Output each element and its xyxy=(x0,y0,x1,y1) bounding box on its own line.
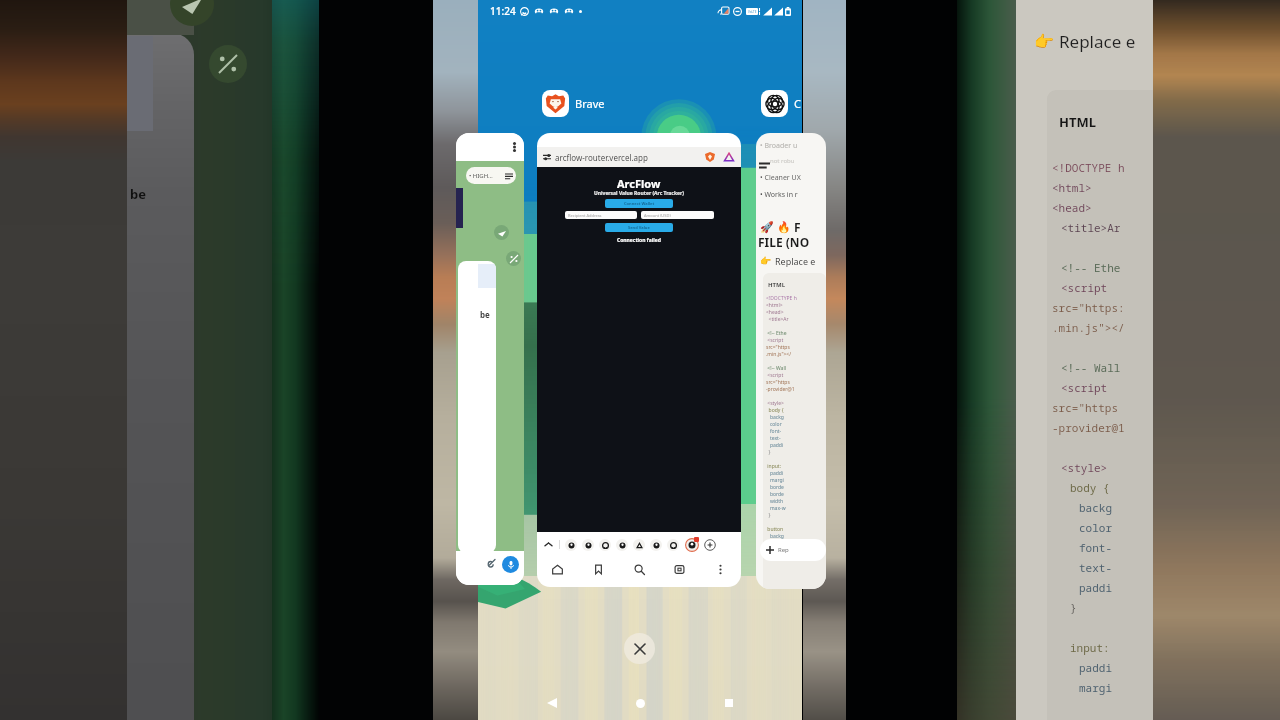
staticText: • Cleaner UX xyxy=(760,173,801,183)
staticText: text- xyxy=(766,435,781,442)
staticText: } xyxy=(1070,600,1077,615)
staticText: HTML xyxy=(768,281,786,289)
staticText: VoLTE xyxy=(748,10,757,14)
staticText: <html> xyxy=(766,302,783,309)
staticText: • HIGH… xyxy=(469,172,493,180)
staticText: <script xyxy=(766,337,784,344)
staticText: paddi xyxy=(766,470,784,477)
staticText: 🚀 xyxy=(760,221,774,234)
button[interactable]: Expand tabs xyxy=(542,538,555,551)
button[interactable]: Current tab xyxy=(684,537,699,552)
staticText: font- xyxy=(1079,540,1112,555)
staticText: paddi xyxy=(1079,660,1112,675)
button[interactable]: New tab xyxy=(703,538,717,552)
staticText: 👉 xyxy=(1034,32,1054,51)
staticText: Replace e xyxy=(1059,30,1136,53)
button[interactable]: Tab 4 xyxy=(616,539,628,551)
staticText: Recipient Address xyxy=(568,213,602,218)
staticText: color xyxy=(1079,520,1112,535)
staticText: } xyxy=(766,512,771,519)
button[interactable]: Tabs xyxy=(670,560,688,578)
button[interactable]: Search xyxy=(630,560,648,578)
staticText: <title>Ar xyxy=(766,316,789,323)
staticText: input: xyxy=(1070,640,1110,655)
staticText: • Works in r xyxy=(760,190,798,200)
staticText: <script xyxy=(1061,380,1108,395)
staticText: <!-- Ethe xyxy=(1061,260,1121,275)
staticText: 🔥 xyxy=(777,221,791,234)
staticText: be xyxy=(480,309,490,320)
staticText: <!-- Wall xyxy=(1061,360,1121,375)
staticText: margi xyxy=(1079,680,1112,695)
staticText: <head> xyxy=(1052,200,1092,215)
button[interactable]: Home xyxy=(548,560,566,578)
button[interactable]: Tab 5 xyxy=(633,539,645,551)
staticText: <!-- Wall xyxy=(766,365,786,372)
staticText: • Broader u xyxy=(760,141,798,151)
staticText: body { xyxy=(766,407,784,414)
button[interactable]: Home xyxy=(625,688,655,718)
staticText: <style> xyxy=(1061,460,1108,475)
staticText: HTML xyxy=(1059,113,1096,131)
button[interactable]: Tab 6 xyxy=(650,539,662,551)
button[interactable]: Tab 7 xyxy=(667,539,679,551)
staticText: Universal Value Router (Arc Tracker) xyxy=(594,190,684,197)
staticText: F xyxy=(794,219,801,235)
staticText: borde xyxy=(766,484,784,491)
button[interactable]: More xyxy=(711,560,729,578)
staticText: src="https: xyxy=(1052,300,1125,315)
button[interactable]: Bookmarks xyxy=(589,560,607,578)
button[interactable]: Brave xyxy=(542,90,605,117)
staticText: input: xyxy=(766,463,781,470)
staticText: be xyxy=(130,185,146,203)
staticText: -provider@1 xyxy=(766,386,795,393)
staticText: src="https xyxy=(766,344,790,351)
button[interactable]: arcflow-router.vercel.app xyxy=(537,133,741,587)
button[interactable]: • HIGH… xyxy=(456,133,524,585)
staticText: <head> xyxy=(766,309,784,316)
button[interactable]: Recents xyxy=(714,688,744,718)
button[interactable]: Rep xyxy=(760,539,826,561)
staticText: 11:24 xyxy=(490,4,516,18)
button[interactable]: C xyxy=(761,90,801,117)
staticText: <!DOCTYPE h xyxy=(766,295,797,302)
staticText: paddi xyxy=(1079,580,1112,595)
staticText: Rep xyxy=(778,546,789,554)
staticText: body { xyxy=(1070,480,1110,495)
button[interactable]: Tab 2 xyxy=(582,539,594,551)
staticText: backg xyxy=(766,533,784,540)
button[interactable]: • Broader u xyxy=(756,133,826,589)
button[interactable]: Back xyxy=(537,688,567,718)
staticText: Amount (USD) xyxy=(644,213,671,218)
button[interactable]: Connect Wallet xyxy=(605,199,673,208)
staticText: margi xyxy=(766,477,784,484)
staticText: .min.js"></ xyxy=(1052,320,1125,335)
staticText: Brave xyxy=(575,96,605,111)
staticText: Send Value xyxy=(628,225,650,230)
button[interactable]: Tab 3 xyxy=(599,539,611,551)
staticText: Connect Wallet xyxy=(624,201,655,206)
button[interactable]: Clear all xyxy=(624,633,655,664)
button[interactable]: Send Value xyxy=(605,223,673,232)
staticText: text- xyxy=(1079,560,1112,575)
staticText: } xyxy=(766,449,771,456)
staticText: paddi xyxy=(766,442,784,449)
staticText: src="https xyxy=(1052,400,1118,415)
staticText: 👉 xyxy=(760,256,772,267)
staticText: <!-- Ethe xyxy=(766,330,787,337)
staticText: .min.js"></ xyxy=(766,351,792,358)
staticText: <html> xyxy=(1052,180,1092,195)
staticText: arcflow-router.vercel.app xyxy=(555,152,648,163)
staticText: <script xyxy=(766,372,784,379)
button[interactable]: Tab 1 xyxy=(565,539,577,551)
staticText: Connection failed xyxy=(617,237,661,244)
staticText: -provider@1 xyxy=(1052,420,1125,435)
staticText: src="https xyxy=(766,379,790,386)
staticText: backg xyxy=(766,414,784,421)
staticText: <script xyxy=(1061,280,1108,295)
staticText: <style> xyxy=(766,400,784,407)
staticText: C xyxy=(794,96,801,111)
staticText: color xyxy=(766,540,782,547)
staticText: backg xyxy=(1079,500,1112,515)
staticText: button xyxy=(766,526,784,533)
